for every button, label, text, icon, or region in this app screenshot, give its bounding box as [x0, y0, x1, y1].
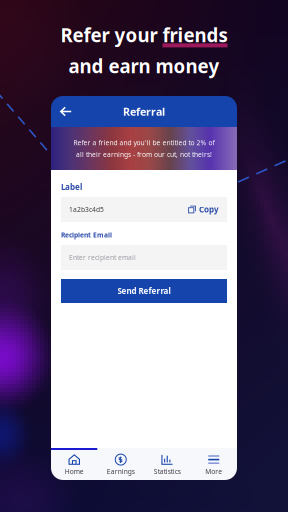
- staticText: Recipient Email: [61, 231, 112, 239]
- staticText: 1a2b3c4d5: [69, 205, 104, 214]
- button[interactable]: Back: [51, 96, 78, 127]
- staticText: Refer a friend and you'll be entitled to…: [73, 138, 214, 147]
- staticText: More: [205, 467, 222, 476]
- staticText: Enter recipient email: [69, 253, 136, 262]
- button[interactable]: More: [190, 450, 237, 480]
- button[interactable]: Earnings: [97, 450, 144, 480]
- staticText: Refer your: [60, 23, 162, 47]
- staticText: Copy: [199, 204, 219, 215]
- button[interactable]: Send Referral: [61, 279, 227, 303]
- staticText: Statistics: [154, 467, 181, 476]
- staticText: Send Referral: [117, 286, 170, 296]
- staticText: and earn money: [68, 54, 219, 78]
- staticText: all their earnings - from our cut, not t…: [76, 150, 212, 159]
- staticText: Earnings: [107, 467, 135, 476]
- staticText: Referral: [123, 104, 165, 119]
- staticText: Label: [61, 182, 82, 192]
- staticText: Home: [65, 467, 84, 476]
- button[interactable]: Home: [51, 450, 97, 480]
- button[interactable]: Statistics: [144, 450, 190, 480]
- staticText: friends: [162, 23, 227, 47]
- button[interactable]: Copy: [188, 197, 219, 222]
